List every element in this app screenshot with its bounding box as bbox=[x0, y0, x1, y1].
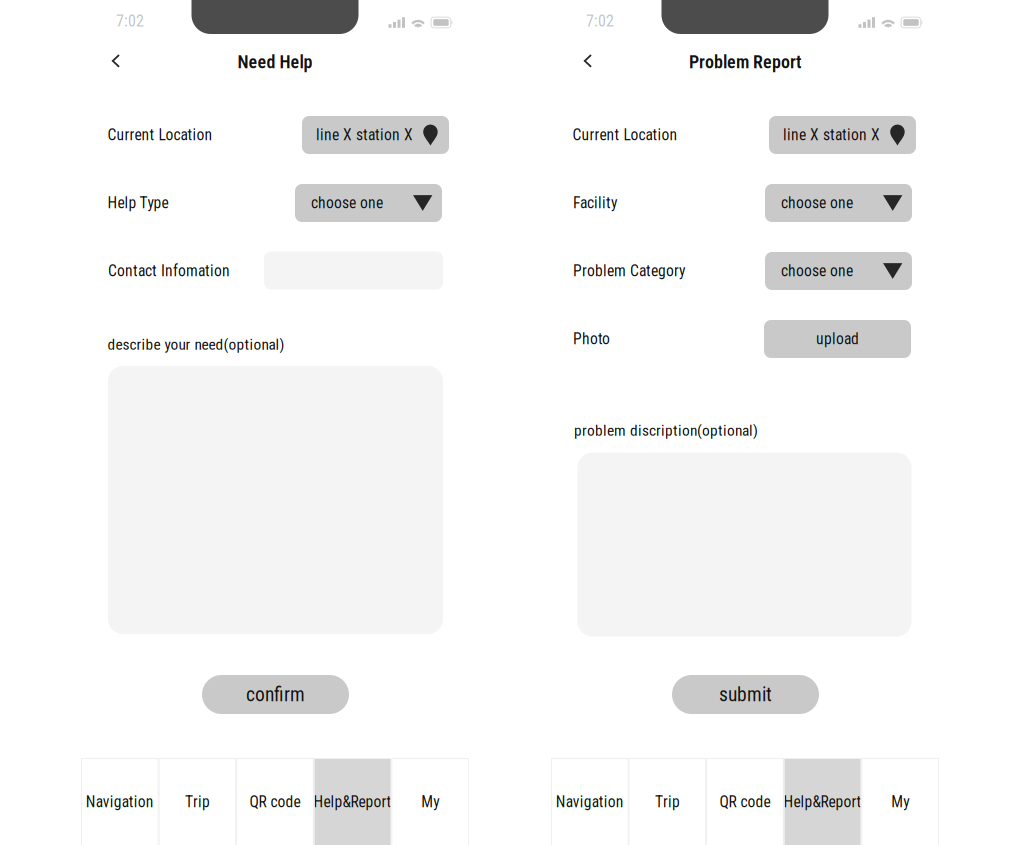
staticText: Trip bbox=[185, 793, 210, 811]
staticText: Trip bbox=[655, 793, 680, 811]
button[interactable]: Back bbox=[572, 45, 604, 77]
staticText: upload bbox=[816, 330, 859, 348]
staticText: Help&Report bbox=[314, 793, 392, 811]
staticText: My bbox=[891, 793, 909, 811]
button[interactable]: choose one bbox=[765, 184, 912, 222]
staticText: 7:02 bbox=[116, 12, 144, 30]
staticText: Current Location bbox=[107, 126, 212, 144]
staticText: Navigation bbox=[86, 793, 154, 811]
button[interactable]: My bbox=[861, 758, 939, 845]
staticText: Need Help bbox=[237, 51, 312, 73]
staticText: line X station X bbox=[783, 126, 880, 144]
staticText: Photo bbox=[573, 330, 610, 348]
staticText: Current Location bbox=[572, 126, 677, 144]
button[interactable]: My bbox=[391, 758, 469, 845]
staticText: Help Type bbox=[107, 194, 168, 212]
button[interactable]: Help&Report bbox=[314, 758, 391, 845]
staticText: My bbox=[421, 793, 439, 811]
button[interactable]: line X station X bbox=[302, 116, 449, 154]
button[interactable]: QR code bbox=[236, 758, 314, 845]
staticText: Help&Report bbox=[784, 793, 862, 811]
staticText: choose one bbox=[781, 262, 853, 280]
staticText: confirm bbox=[246, 683, 305, 706]
staticText: choose one bbox=[781, 194, 853, 212]
button[interactable]: Trip bbox=[629, 758, 706, 845]
button[interactable]: line X station X bbox=[769, 116, 916, 154]
button[interactable]: upload bbox=[764, 320, 911, 358]
button[interactable]: QR code bbox=[706, 758, 784, 845]
staticText: Facility bbox=[573, 194, 617, 212]
staticText: choose one bbox=[311, 194, 383, 212]
button[interactable]: Trip bbox=[159, 758, 236, 845]
staticText: submit bbox=[719, 683, 772, 706]
button[interactable]: Navigation bbox=[551, 758, 629, 845]
button[interactable]: choose one bbox=[765, 252, 912, 290]
staticText: Problem Report bbox=[689, 51, 801, 73]
staticText: Navigation bbox=[556, 793, 624, 811]
button[interactable]: Navigation bbox=[81, 758, 159, 845]
staticText: 7:02 bbox=[586, 12, 614, 30]
staticText: QR code bbox=[249, 793, 300, 811]
button[interactable]: choose one bbox=[295, 184, 442, 222]
button[interactable]: confirm bbox=[202, 675, 349, 714]
staticText: describe your need(optional) bbox=[107, 335, 284, 353]
button[interactable]: Help&Report bbox=[784, 758, 861, 845]
staticText: QR code bbox=[719, 793, 770, 811]
button[interactable]: Back bbox=[100, 45, 132, 77]
staticText: line X station X bbox=[316, 126, 413, 144]
staticText: Contact Infomation bbox=[108, 262, 230, 280]
button[interactable]: submit bbox=[672, 675, 819, 714]
staticText: Problem Category bbox=[573, 262, 685, 280]
staticText: problem discription(optional) bbox=[574, 421, 758, 439]
